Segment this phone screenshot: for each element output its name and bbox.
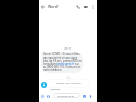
button[interactable]: More options xyxy=(89,3,97,11)
button[interactable]: Call xyxy=(74,3,82,11)
button[interactable]: Contact avatar xyxy=(41,82,47,88)
button[interactable]: AJOUTER xyxy=(50,87,61,90)
button[interactable]: Vaccin COVID : Si vous n'êtes pas vaccin… xyxy=(41,52,83,73)
staticText: Word? xyxy=(48,4,59,9)
staticText: 09:11 xyxy=(39,47,97,51)
button[interactable]: Camera xyxy=(45,93,51,99)
button[interactable]: Resend xyxy=(66,76,71,81)
staticText: Vaccin COVID : Si vous n'êtes pas vaccin… xyxy=(43,52,82,71)
staticText: Message texte xyxy=(57,94,74,97)
button[interactable]: Video call xyxy=(82,3,90,11)
staticText: AJOUTER xyxy=(50,87,61,90)
button[interactable]: Back xyxy=(39,3,47,11)
button[interactable]: Emoji xyxy=(81,93,87,99)
button[interactable]: Add attachment xyxy=(39,93,45,99)
button[interactable]: Send xyxy=(87,93,93,99)
staticText: Ajouter aux contacts ? xyxy=(56,81,82,84)
button[interactable]: Message texte xyxy=(53,93,80,98)
